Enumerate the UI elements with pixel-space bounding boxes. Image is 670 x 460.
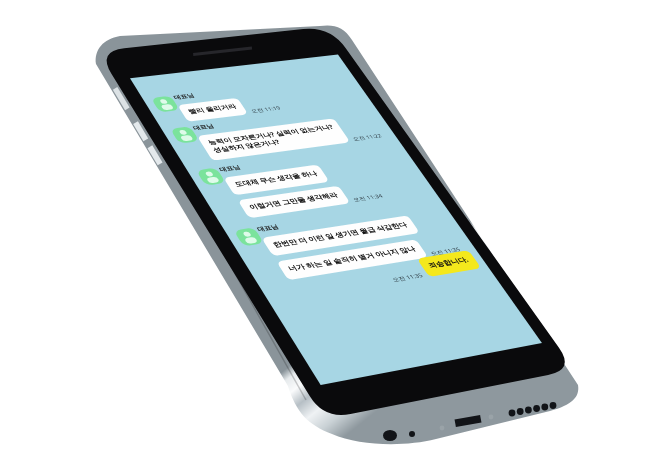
button[interactable]: Phone showing a chat conversation	[0, 0, 670, 460]
